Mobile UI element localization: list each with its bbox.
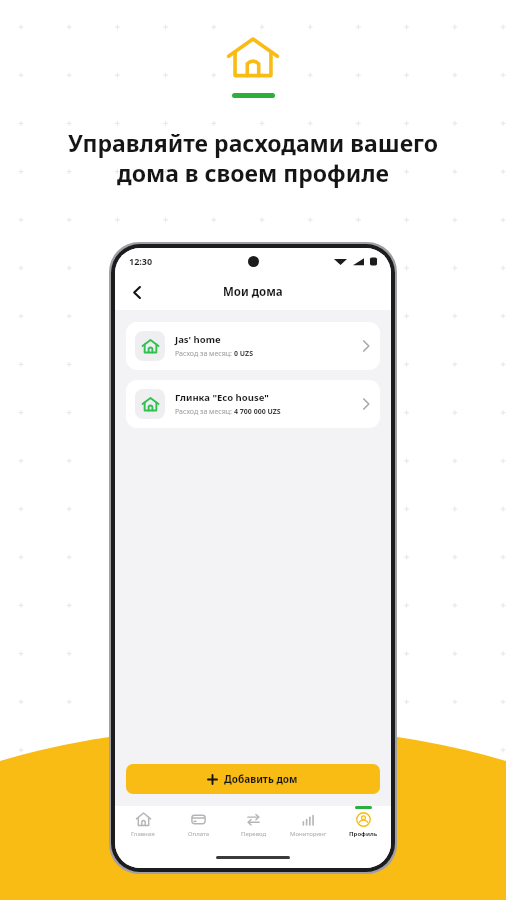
staticText: Перевод	[241, 830, 267, 838]
staticText: Управляйте расходами вашего дома в своем…	[0, 127, 506, 189]
staticText: 4 700 000 UZS	[234, 407, 281, 417]
staticText: Глинка "Eco house"	[175, 391, 269, 404]
staticText: Jas' home	[175, 333, 221, 346]
staticText: Расход за месяц:	[175, 407, 234, 417]
staticText: Добавить дом	[224, 772, 298, 786]
button[interactable]: Оплата	[171, 806, 226, 846]
button[interactable]: Глинка "Eco house"	[126, 380, 380, 428]
button[interactable]: Jas' home	[126, 322, 380, 370]
staticText: Оплата	[188, 830, 210, 838]
staticText: 0 UZS	[234, 349, 254, 359]
button[interactable]: Мониторинг	[281, 806, 336, 846]
button[interactable]: Перевод	[226, 806, 281, 846]
button[interactable]: Профиль	[336, 806, 391, 846]
staticText: Расход за месяц:	[175, 349, 234, 359]
button[interactable]: Главная	[115, 806, 171, 846]
button[interactable]: Добавить дом	[126, 764, 380, 794]
button[interactable]: Back	[123, 278, 151, 306]
staticText: 12:30	[129, 255, 153, 267]
staticText: Мониторинг	[290, 830, 327, 838]
staticText: Главная	[131, 830, 155, 838]
staticText: Профиль	[349, 830, 378, 838]
staticText: Мои дома	[223, 284, 283, 300]
